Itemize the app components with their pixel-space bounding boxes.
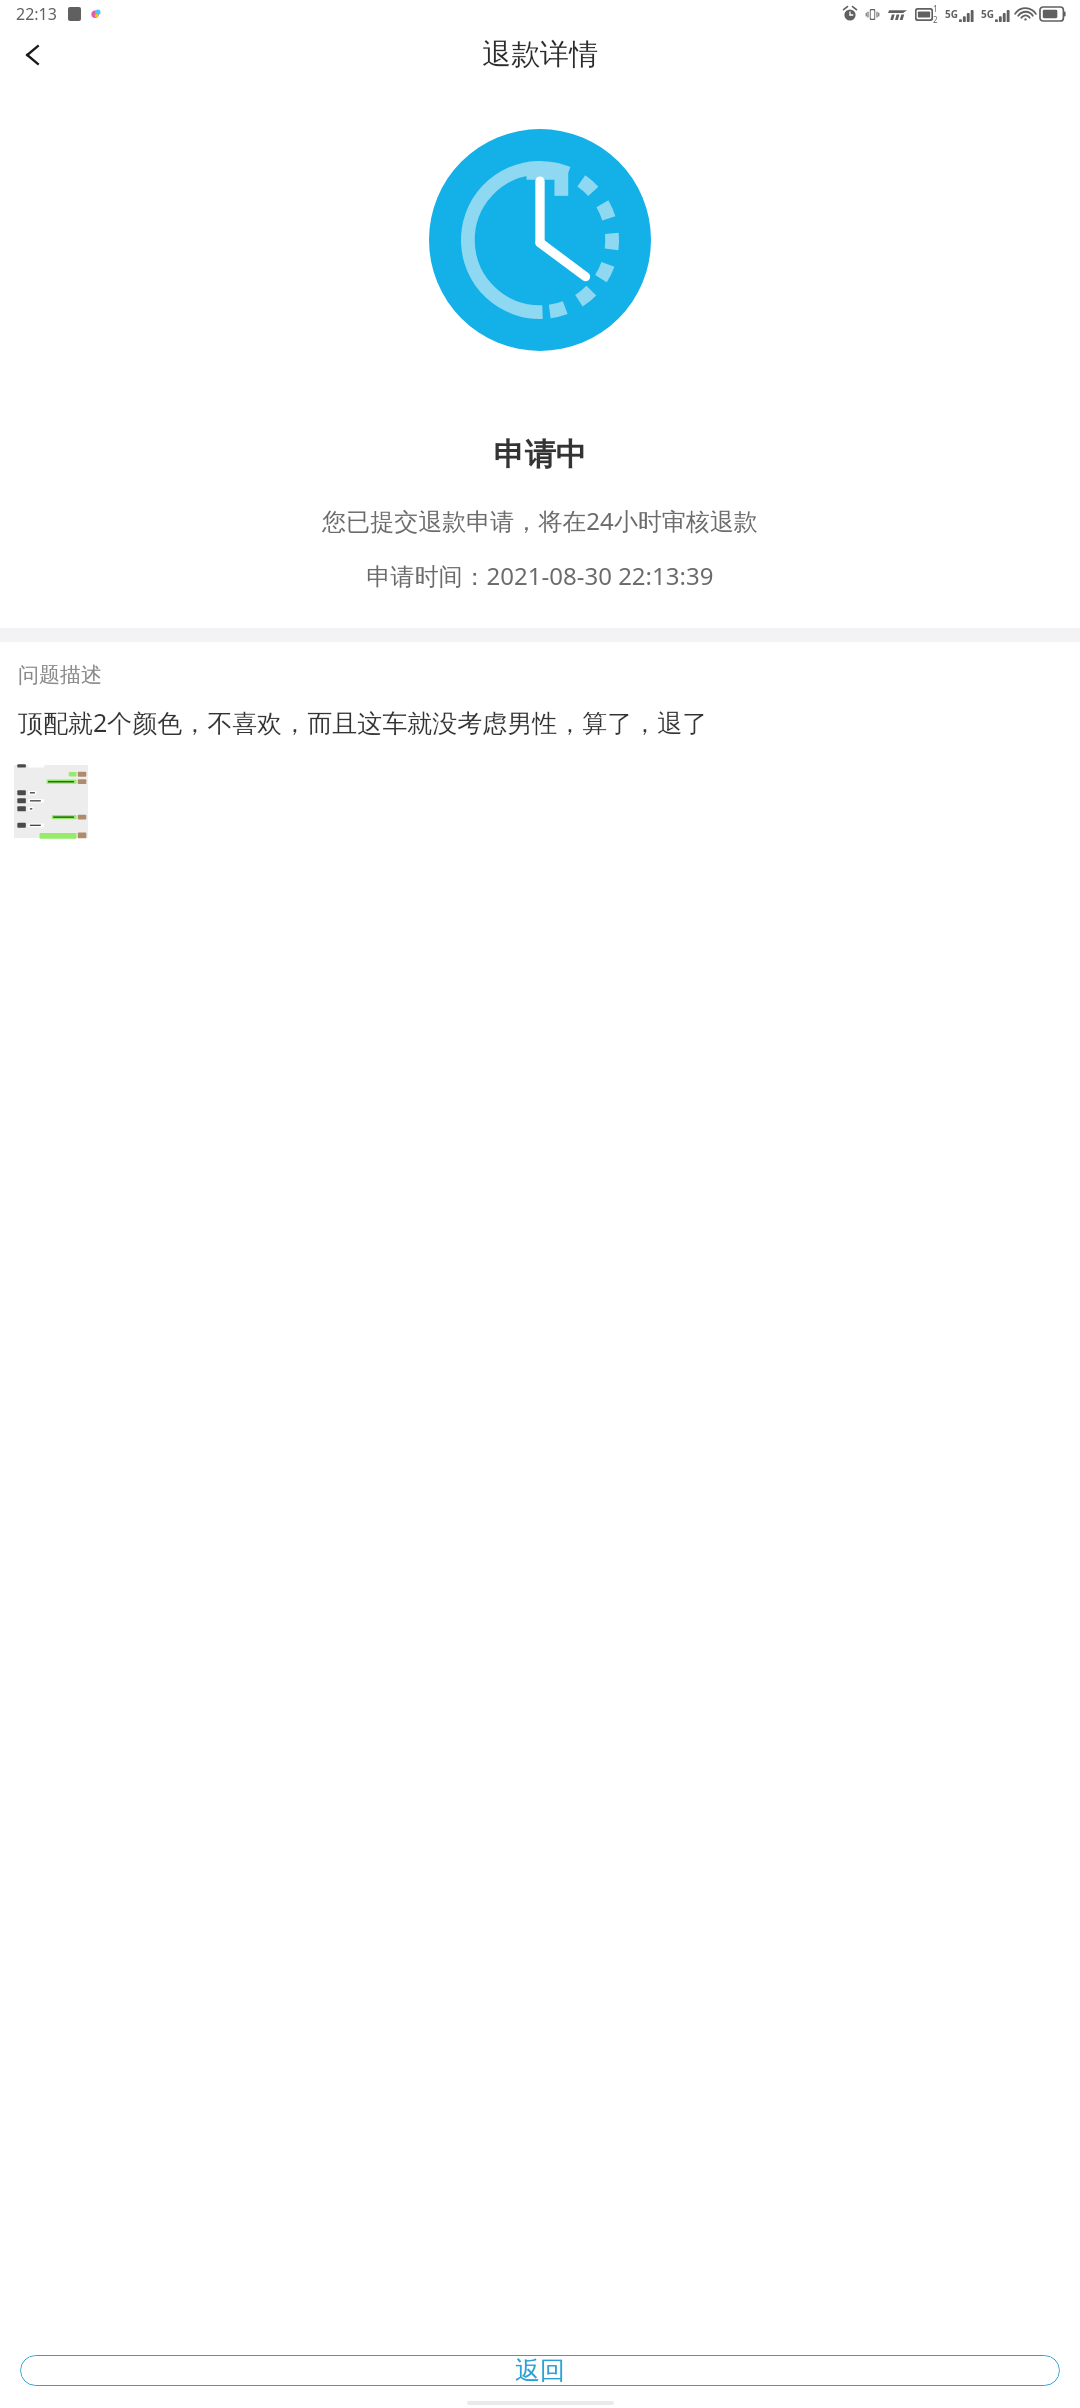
- staticText: 顶配就2个颜色，不喜欢，而且这车就没考虑男性，算了，退了: [18, 705, 708, 739]
- staticText: 2: [933, 14, 938, 25]
- staticText: 申请时间：2021-08-30 22:13:39: [0, 559, 1080, 592]
- button[interactable]: 返回: [10, 32, 56, 78]
- staticText: 1: [933, 3, 938, 14]
- staticText: 您已提交退款申请，将在24小时审核退款: [0, 504, 1080, 537]
- staticText: 退款详情: [482, 36, 598, 73]
- button[interactable]: 聊天截图: [14, 765, 88, 838]
- staticText: 问题描述: [18, 662, 102, 688]
- button[interactable]: 返回: [20, 2355, 1060, 2386]
- staticText: 申请中: [0, 435, 1080, 474]
- staticText: 5G: [981, 7, 994, 21]
- staticText: 22:13: [16, 3, 57, 25]
- staticText: 5G: [945, 7, 958, 21]
- staticText: 返回: [515, 2355, 565, 2386]
